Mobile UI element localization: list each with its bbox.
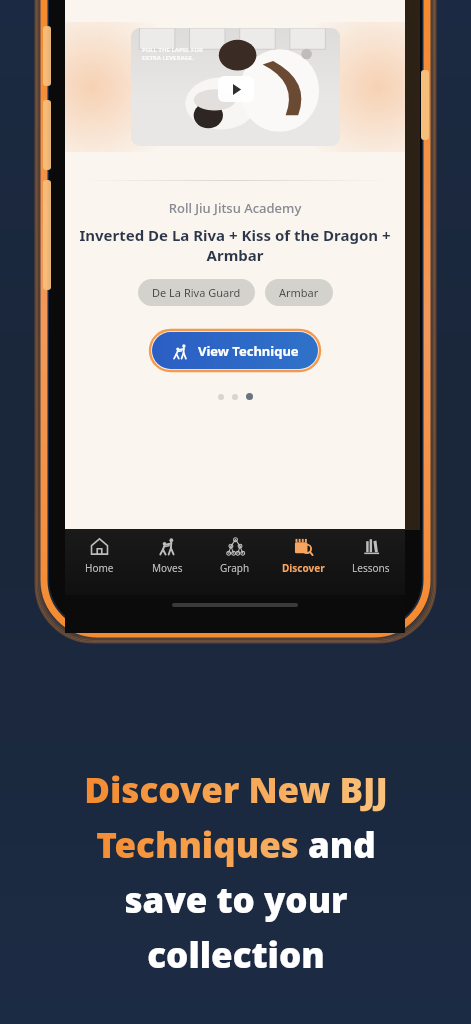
button[interactable]: De La Riva Guard xyxy=(138,279,255,306)
button[interactable]: Graph xyxy=(201,537,269,595)
button[interactable]: View Technique xyxy=(152,332,318,369)
button[interactable]: Home xyxy=(65,537,133,595)
staticText: Home xyxy=(85,561,114,575)
button[interactable]: Armbar xyxy=(265,279,333,306)
button[interactable]: Discover xyxy=(269,537,337,595)
button[interactable]: Lessons xyxy=(337,537,405,595)
staticText: Discover New BJJ Techniques and save to … xyxy=(84,766,388,978)
staticText: Inverted De La Riva + Kiss of the Dragon… xyxy=(75,225,395,265)
staticText: Lessons xyxy=(352,561,390,575)
staticText: Discover xyxy=(282,561,325,575)
staticText: Moves xyxy=(152,561,183,575)
staticText: De La Riva Guard xyxy=(152,285,241,300)
staticText: Graph xyxy=(220,561,250,575)
staticText: View Technique xyxy=(198,342,299,360)
staticText: Roll Jiu Jitsu Academy xyxy=(65,199,405,217)
button[interactable]: Moves xyxy=(133,537,201,595)
staticText: Armbar xyxy=(279,285,319,300)
staticText: PULL THE LAPEL FOR EXTRA LEVERAGE. xyxy=(142,46,203,62)
button[interactable]: Play video xyxy=(218,76,254,102)
